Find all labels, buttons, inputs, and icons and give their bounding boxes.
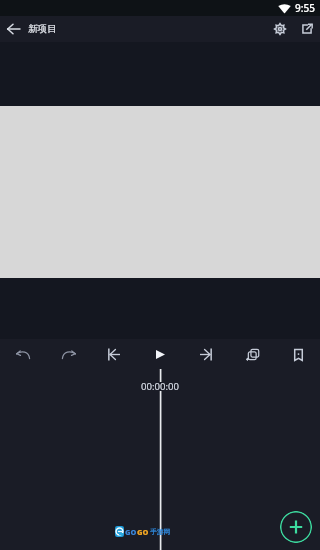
button[interactable]: Skip to start [91,339,137,370]
button[interactable]: Play [137,339,183,370]
staticText: 9:55 [295,1,315,15]
button[interactable]: Bookmark [275,339,320,370]
button[interactable]: Duplicate [229,339,275,370]
staticText: 新项目 [28,23,57,35]
staticText: GO [125,527,137,537]
button[interactable]: Undo [0,339,46,370]
button[interactable]: Back [0,16,26,42]
staticText: GO [137,527,149,537]
button[interactable]: Skip to end [183,339,229,370]
button[interactable]: Redo [46,339,92,370]
button[interactable]: Export [294,16,320,42]
staticText: 00:00:00 [141,380,180,393]
button[interactable]: Add [280,511,312,543]
staticText: 手游网 [150,527,171,536]
button[interactable]: Settings [267,16,293,42]
